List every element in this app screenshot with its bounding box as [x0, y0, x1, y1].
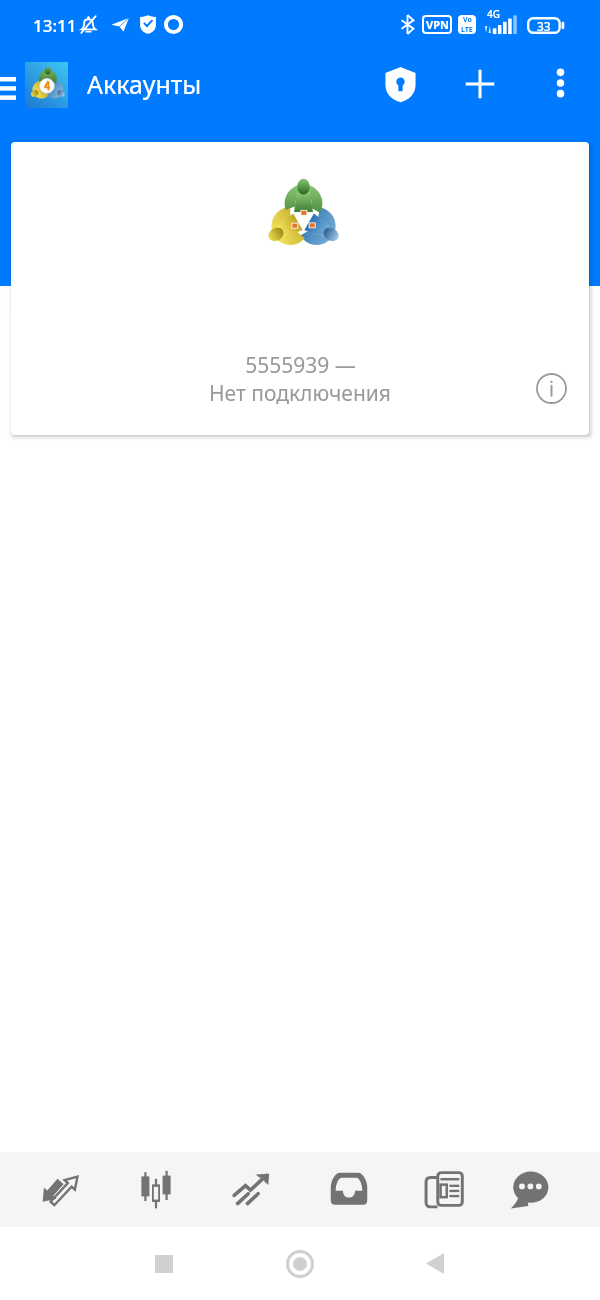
staticText: 5555939 — [245, 351, 356, 380]
staticText: Нет подключения [209, 379, 391, 408]
button[interactable]: Home [232, 1227, 368, 1300]
button[interactable]: Trade [200, 1152, 300, 1227]
button[interactable]: Quotes [0, 1152, 100, 1227]
staticText: 13:11 [33, 14, 77, 37]
button[interactable]: Charts [100, 1152, 200, 1227]
button[interactable]: News [400, 1152, 500, 1227]
button[interactable]: More options [536, 59, 584, 107]
button[interactable]: Add account [456, 60, 504, 108]
button[interactable]: 5555939 — [11, 142, 589, 435]
staticText: Vo [463, 15, 472, 25]
button[interactable]: Back [368, 1227, 504, 1300]
button[interactable]: Security [376, 60, 424, 108]
staticText: VPN [426, 17, 449, 32]
button[interactable]: Open navigation menu [0, 66, 16, 110]
staticText: LTE [461, 25, 473, 34]
button[interactable]: History [300, 1152, 400, 1227]
button[interactable]: Account information [523, 360, 579, 416]
button[interactable]: Chat [500, 1152, 600, 1227]
button[interactable]: Recents [96, 1227, 232, 1300]
staticText: 33 [537, 18, 551, 34]
staticText: Аккаунты [87, 67, 202, 101]
staticText: 4G [487, 7, 500, 21]
